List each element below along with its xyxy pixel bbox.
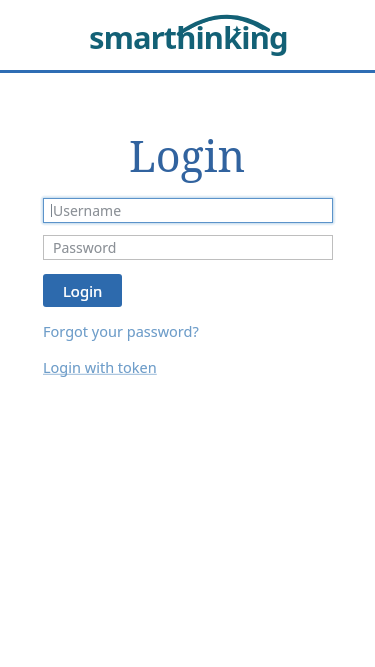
staticText: Login	[129, 126, 246, 185]
staticText: Password	[53, 238, 117, 257]
other: Smarthinking	[84, 8, 292, 60]
staticText: Forgot your password?	[43, 321, 199, 341]
staticText: Username	[53, 201, 122, 220]
button[interactable]: Forgot your password?	[42, 319, 200, 343]
staticText: Login with token	[43, 357, 157, 377]
button[interactable]: Login with token	[42, 355, 158, 379]
staticText: smarthinking	[89, 16, 288, 58]
button[interactable]: Password	[43, 235, 333, 260]
button[interactable]: Username	[43, 198, 333, 223]
staticText: Login	[63, 281, 103, 301]
button[interactable]: Login	[43, 274, 122, 307]
